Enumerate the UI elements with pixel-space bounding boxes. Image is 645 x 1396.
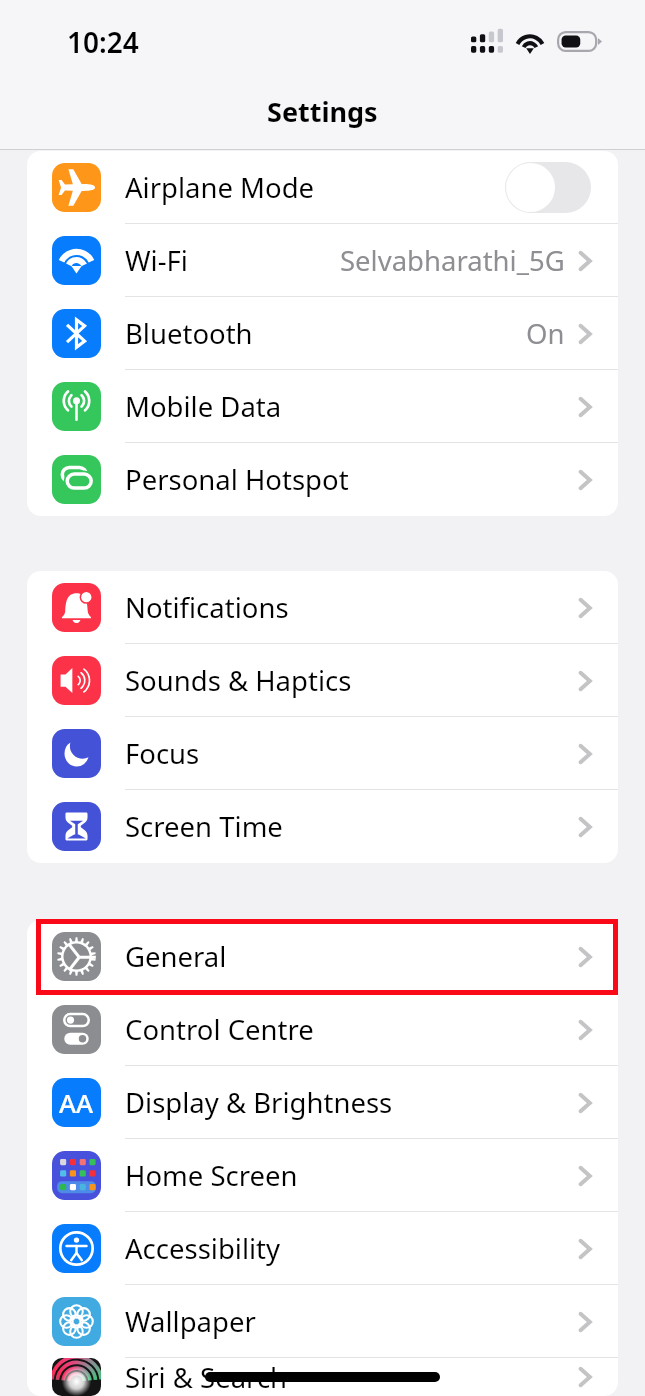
button[interactable]: Notifications [27,571,618,644]
button[interactable]: Airplane Mode toggle [505,162,591,213]
staticText: Focus [125,735,200,772]
staticText: Mobile Data [125,388,282,425]
button[interactable]: Sounds & Haptics [27,644,618,717]
staticText: AA [59,1085,94,1120]
button[interactable]: Control Centre [27,993,618,1066]
staticText: Home Screen [125,1157,298,1194]
staticText: Accessibility [125,1230,281,1267]
staticText: General [125,938,227,975]
staticText: Control Centre [125,1011,314,1048]
button[interactable]: General [27,920,618,993]
button[interactable]: Personal Hotspot [27,443,618,516]
button[interactable]: Wi-Fi [27,224,618,297]
staticText: On [526,315,565,352]
staticText: Wi-Fi [125,242,188,279]
button[interactable]: Airplane Mode [27,151,618,224]
button[interactable]: Screen Time [27,790,618,863]
button[interactable]: AA [27,1066,618,1139]
staticText: 10:24 [67,23,139,61]
button[interactable]: Home Screen [27,1139,618,1212]
staticText: Siri & Search [125,1359,288,1396]
staticText: Screen Time [125,808,283,845]
staticText: Settings [267,93,378,130]
button[interactable]: Wallpaper [27,1285,618,1358]
button[interactable]: Accessibility [27,1212,618,1285]
staticText: Selvabharathi_5G [340,242,565,279]
button[interactable]: Bluetooth [27,297,618,370]
button[interactable]: Focus [27,717,618,790]
staticText: Display & Brightness [125,1084,393,1121]
staticText: Sounds & Haptics [125,662,352,699]
staticText: Personal Hotspot [125,461,349,498]
staticText: Notifications [125,589,289,626]
button[interactable]: Siri & Search [27,1358,618,1396]
staticText: Airplane Mode [125,169,315,206]
button[interactable]: Mobile Data [27,370,618,443]
staticText: Wallpaper [125,1303,256,1340]
staticText: Bluetooth [125,315,253,352]
